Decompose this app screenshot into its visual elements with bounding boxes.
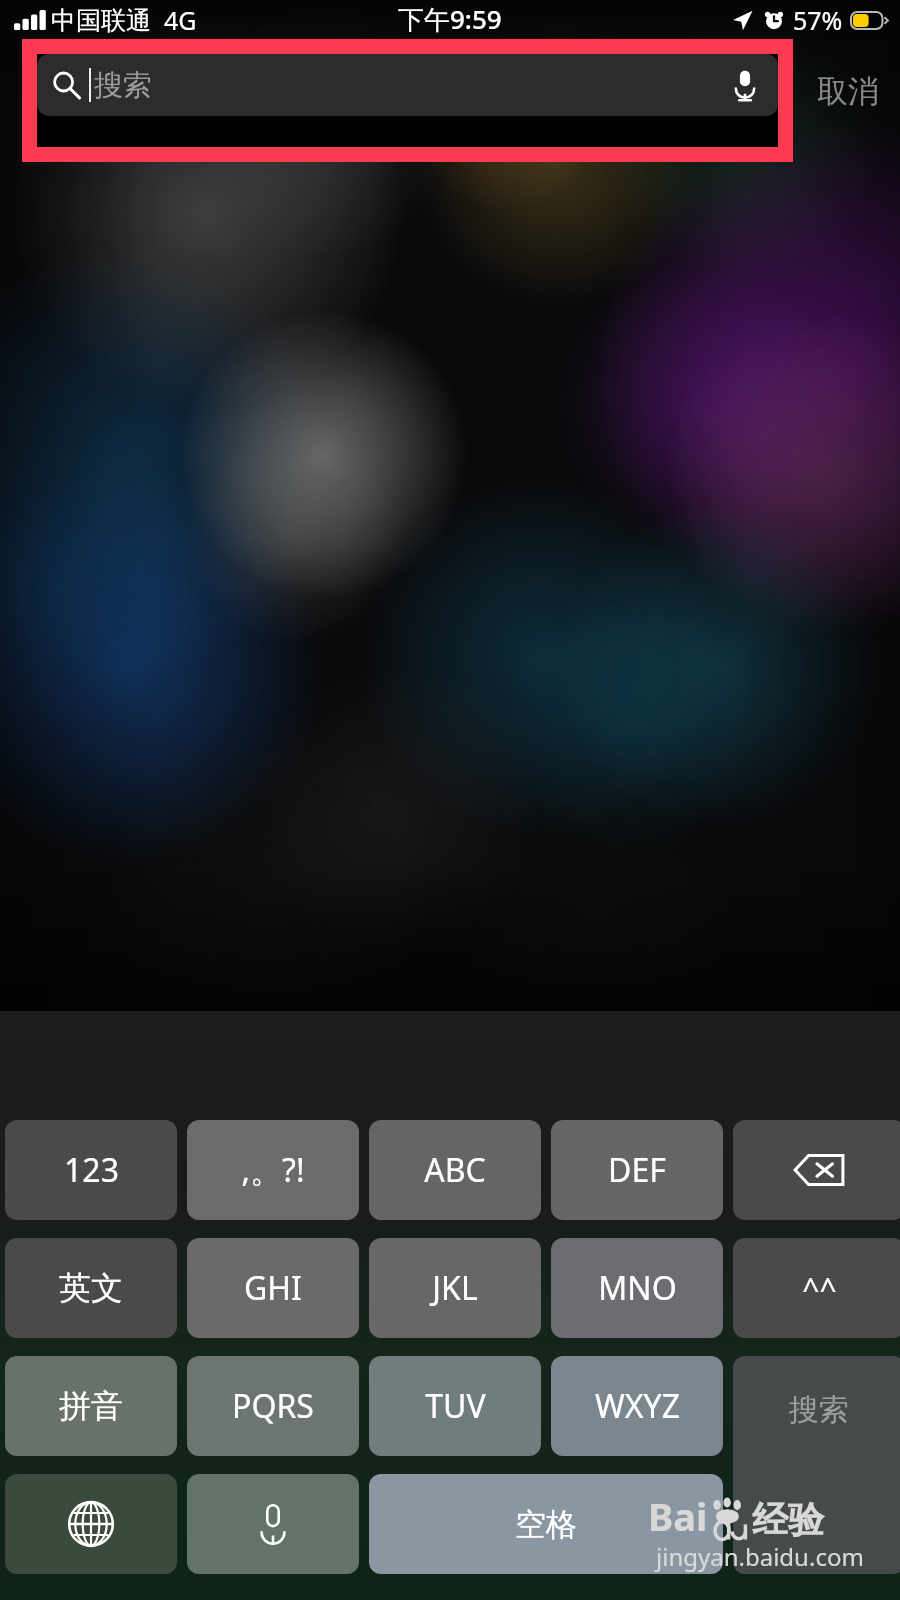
staticText: ,。?!: [241, 1148, 305, 1192]
staticText: TUV: [425, 1384, 486, 1428]
button[interactable]: WXYZ: [551, 1356, 723, 1456]
staticText: ABC: [424, 1148, 486, 1192]
button[interactable]: 删除: [733, 1120, 900, 1220]
button[interactable]: DEF: [551, 1120, 723, 1220]
button[interactable]: JKL: [369, 1238, 541, 1338]
button[interactable]: 切换输入法: [5, 1474, 177, 1574]
button[interactable]: 拼音: [5, 1356, 177, 1456]
staticText: MNO: [598, 1266, 677, 1310]
button[interactable]: ,。?!: [187, 1120, 359, 1220]
staticText: Bai: [648, 1490, 708, 1542]
button[interactable]: 英文: [5, 1238, 177, 1338]
button[interactable]: MNO: [551, 1238, 723, 1338]
staticText: 4G: [164, 3, 197, 37]
button[interactable]: GHI: [187, 1238, 359, 1338]
button[interactable]: 搜索: [733, 1356, 900, 1574]
staticText: GHI: [244, 1266, 302, 1310]
button[interactable]: 语音输入: [726, 66, 764, 104]
button[interactable]: TUV: [369, 1356, 541, 1456]
staticText: 57%: [793, 3, 843, 37]
staticText: 搜索: [94, 67, 152, 104]
staticText: 拼音: [59, 1386, 123, 1426]
staticText: 123: [64, 1148, 119, 1192]
button[interactable]: PQRS: [187, 1356, 359, 1456]
button[interactable]: 空格: [369, 1474, 723, 1574]
staticText: WXYZ: [595, 1384, 680, 1428]
button[interactable]: 语音输入: [187, 1474, 359, 1574]
button[interactable]: 123: [5, 1120, 177, 1220]
staticText: DEF: [608, 1148, 666, 1192]
button[interactable]: 搜索: [37, 54, 778, 116]
button[interactable]: ABC: [369, 1120, 541, 1220]
staticText: 空格: [515, 1505, 577, 1544]
staticText: 英文: [59, 1268, 123, 1308]
staticText: 中国联通: [51, 5, 151, 36]
button[interactable]: 取消: [796, 58, 900, 124]
staticText: 下午9:59: [398, 1, 502, 37]
staticText: JKL: [432, 1266, 478, 1310]
staticText: ^^: [802, 1268, 837, 1309]
staticText: PQRS: [232, 1384, 314, 1428]
staticText: jingyan.baidu.com: [656, 1540, 864, 1573]
button[interactable]: ^^: [733, 1238, 900, 1338]
staticText: 搜索: [789, 1391, 849, 1429]
staticText: 经验: [752, 1497, 824, 1542]
staticText: 取消: [817, 72, 879, 111]
